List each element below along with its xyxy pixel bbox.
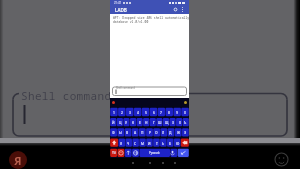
- staticText: Я: [14, 153, 22, 168]
- staticText: Д: [169, 130, 172, 134]
- button[interactable]: ?!#: [110, 148, 117, 158]
- staticText: 4: [137, 110, 139, 114]
- button[interactable]: Т: [153, 138, 160, 148]
- staticText: Русский: [149, 151, 160, 155]
- staticText: Ж: [177, 130, 180, 134]
- staticText: 3: [129, 110, 131, 114]
- button[interactable]: Е: [136, 117, 143, 127]
- button[interactable]: Ц: [117, 117, 124, 127]
- button[interactable]: С: [132, 138, 139, 148]
- button[interactable]: К: [130, 117, 137, 127]
- button[interactable]: Щ: [163, 117, 170, 127]
- button[interactable]: Profile: [9, 151, 27, 169]
- button[interactable]: Seek bar: [0, 138, 300, 143]
- button[interactable]: 9: [173, 107, 181, 117]
- button[interactable]: Г: [150, 117, 157, 127]
- button[interactable]: More options: [180, 7, 185, 12]
- button[interactable]: Home: [147, 160, 152, 165]
- button[interactable]: Keyboard settings: [184, 101, 187, 104]
- staticText: Х: [179, 120, 181, 124]
- button[interactable]: 0: [181, 107, 189, 117]
- button[interactable]: Х: [176, 117, 183, 127]
- button[interactable]: Ю: [174, 138, 181, 148]
- button[interactable]: Ы: [117, 127, 124, 137]
- button[interactable]: Н: [143, 117, 150, 127]
- staticText: Shell command: [116, 86, 135, 90]
- button[interactable]: П: [139, 127, 146, 137]
- staticText: Я: [120, 141, 123, 145]
- button[interactable]: Русский: [139, 148, 170, 158]
- button[interactable]: Key: [110, 138, 118, 148]
- staticText: М: [141, 141, 144, 145]
- button[interactable]: Ф: [110, 127, 117, 137]
- button[interactable]: Ж: [175, 127, 182, 137]
- staticText: Ъ: [184, 120, 187, 124]
- button[interactable]: Key: [181, 138, 189, 148]
- staticText: З: [172, 120, 174, 124]
- button[interactable]: О: [153, 127, 160, 137]
- staticText: И: [148, 141, 151, 145]
- staticText: LADB: [115, 7, 127, 13]
- staticText: 2: [121, 110, 123, 114]
- button[interactable]: Emoji: [274, 152, 289, 167]
- staticText: К: [132, 120, 135, 124]
- button[interactable]: Back: [130, 160, 135, 165]
- button[interactable]: 1: [110, 107, 118, 117]
- button[interactable]: 2: [118, 107, 126, 117]
- staticText: Г: [153, 120, 155, 124]
- staticText: Б: [169, 141, 172, 145]
- staticText: Э: [184, 130, 187, 134]
- button[interactable]: Key: [125, 148, 132, 158]
- button[interactable]: Shell command: [112, 85, 187, 96]
- button[interactable]: З: [169, 117, 176, 127]
- button[interactable]: 5: [142, 107, 150, 117]
- button[interactable]: Record: [112, 101, 115, 104]
- button[interactable]: И: [146, 138, 153, 148]
- staticText: Shell command: [21, 88, 112, 103]
- button[interactable]: Р: [146, 127, 153, 137]
- button[interactable]: Ь: [160, 138, 167, 148]
- button[interactable]: Д: [167, 127, 174, 137]
- button[interactable]: Key: [178, 148, 190, 158]
- button[interactable]: 3: [126, 107, 134, 117]
- staticText: 21:47: [114, 1, 122, 5]
- button[interactable]: Б: [167, 138, 174, 148]
- button[interactable]: Shell command: [21, 88, 112, 103]
- button[interactable]: Key: [170, 148, 177, 158]
- button[interactable]: 7: [157, 107, 165, 117]
- staticText: Ф: [112, 130, 115, 134]
- staticText: А: [134, 130, 137, 134]
- button[interactable]: Й: [110, 117, 117, 127]
- button[interactable]: Ъ: [182, 117, 189, 127]
- staticText: 1: [113, 110, 115, 114]
- button[interactable]: У: [123, 117, 130, 127]
- button[interactable]: Key: [117, 148, 124, 158]
- button[interactable]: Info: [173, 7, 178, 12]
- button[interactable]: Ч: [125, 138, 132, 148]
- button[interactable]: 6: [150, 107, 158, 117]
- staticText: С: [134, 141, 137, 145]
- button[interactable]: В: [124, 127, 131, 137]
- staticText: Ь: [162, 141, 165, 145]
- staticText: Ы: [119, 130, 122, 134]
- button[interactable]: 8: [165, 107, 173, 117]
- button[interactable]: Я: [118, 138, 125, 148]
- staticText: Ш: [158, 120, 162, 124]
- button[interactable]: Recents: [160, 160, 165, 165]
- button[interactable]: М: [139, 138, 146, 148]
- button[interactable]: Л: [160, 127, 167, 137]
- staticText: Й: [112, 120, 115, 124]
- button[interactable]: Э: [182, 127, 189, 137]
- button[interactable]: А: [132, 127, 139, 137]
- staticText: WPT: Dropped size 406 shell automaticall…: [113, 16, 190, 24]
- button[interactable]: Ш: [156, 117, 163, 127]
- button[interactable]: Voice search: [172, 160, 177, 165]
- staticText: 5: [145, 110, 147, 114]
- staticText: В: [126, 130, 129, 134]
- staticText: Е: [139, 120, 141, 124]
- button[interactable]: 4: [134, 107, 142, 117]
- staticText: 9: [176, 110, 178, 114]
- button[interactable]: Key: [132, 148, 139, 158]
- staticText: Т: [156, 141, 158, 145]
- staticText: П: [141, 130, 144, 134]
